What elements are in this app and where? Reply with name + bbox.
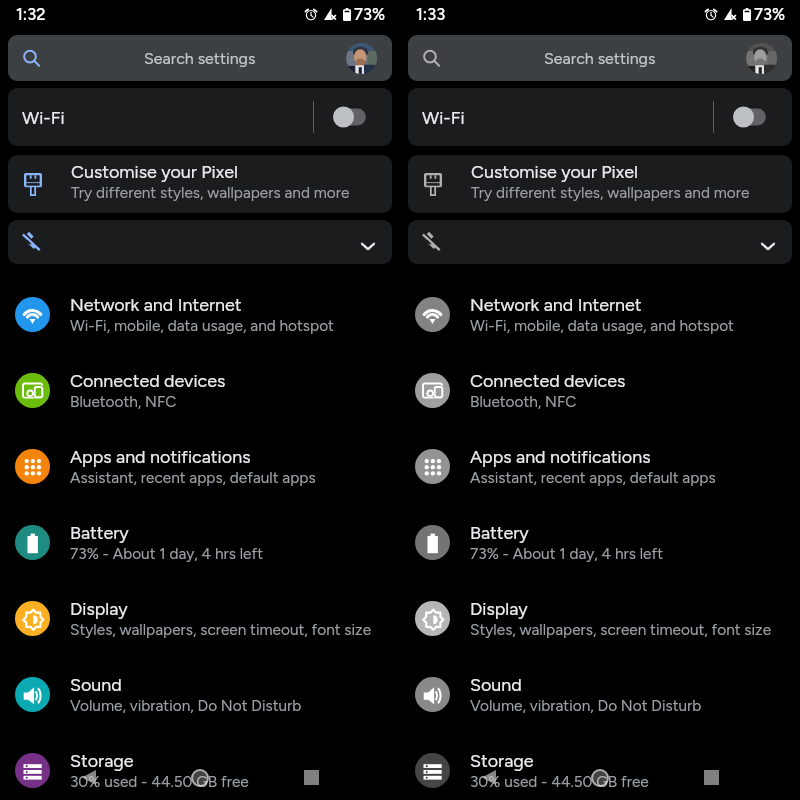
- staticText: 1:32: [16, 4, 46, 24]
- button[interactable]: Connected devices: [400, 352, 800, 428]
- button[interactable]: Back: [70, 764, 108, 790]
- staticText: 73%: [354, 4, 386, 24]
- staticText: Display: [70, 598, 128, 619]
- button[interactable]: Expand: [8, 220, 392, 264]
- button[interactable]: Home: [181, 764, 219, 791]
- staticText: 73%: [754, 4, 786, 24]
- staticText: Sound: [70, 674, 122, 695]
- staticText: 30% used - 44.50 GB free: [70, 772, 249, 790]
- staticText: Assistant, recent apps, default apps: [470, 468, 716, 486]
- staticText: 73% - About 1 day, 4 hrs left: [70, 544, 264, 562]
- staticText: 1:33: [416, 4, 446, 24]
- button[interactable]: Connected devices: [0, 352, 400, 428]
- staticText: Volume, vibration, Do Not Disturb: [70, 696, 302, 714]
- button[interactable]: Wi-Fi: [408, 88, 792, 146]
- button[interactable]: Search settings: [408, 35, 792, 81]
- button[interactable]: Battery: [0, 504, 400, 580]
- button[interactable]: Sound: [0, 656, 400, 732]
- button[interactable]: Home: [581, 764, 619, 791]
- staticText: Customise your Pixel: [471, 161, 638, 182]
- staticText: Connected devices: [470, 370, 626, 391]
- button[interactable]: Expand: [757, 235, 779, 257]
- button[interactable]: Search settings: [8, 35, 392, 81]
- staticText: Bluetooth, NFC: [70, 392, 177, 410]
- button[interactable]: Expand: [408, 220, 792, 264]
- button[interactable]: Back: [470, 764, 508, 790]
- staticText: Wi-Fi, mobile, data usage, and hotspot: [470, 316, 734, 334]
- button[interactable]: Account: [746, 43, 777, 74]
- staticText: Wi-Fi: [422, 107, 465, 128]
- button[interactable]: Storage: [400, 732, 800, 800]
- staticText: Network and Internet: [70, 294, 242, 315]
- button[interactable]: Network and Internet: [0, 276, 400, 352]
- staticText: Wi-Fi, mobile, data usage, and hotspot: [70, 316, 334, 334]
- button[interactable]: Recents: [292, 764, 330, 791]
- staticText: Connected devices: [70, 370, 226, 391]
- staticText: Battery: [470, 522, 529, 543]
- staticText: Apps and notifications: [70, 446, 251, 467]
- button[interactable]: Apps and notifications: [400, 428, 800, 504]
- button[interactable]: Sound: [400, 656, 800, 732]
- staticText: Volume, vibration, Do Not Disturb: [470, 696, 702, 714]
- staticText: Network and Internet: [470, 294, 642, 315]
- button[interactable]: Display: [0, 580, 400, 656]
- staticText: Storage: [470, 750, 534, 771]
- staticText: Display: [470, 598, 528, 619]
- button[interactable]: Display: [400, 580, 800, 656]
- staticText: Try different styles, wallpapers and mor…: [71, 183, 350, 201]
- staticText: 73% - About 1 day, 4 hrs left: [470, 544, 664, 562]
- staticText: Bluetooth, NFC: [470, 392, 577, 410]
- button[interactable]: Expand: [357, 235, 379, 257]
- button[interactable]: Wi-Fi toggle: [732, 105, 768, 129]
- button[interactable]: Customise your Pixel: [8, 155, 392, 213]
- staticText: Try different styles, wallpapers and mor…: [471, 183, 750, 201]
- staticText: Battery: [70, 522, 129, 543]
- staticText: Customise your Pixel: [71, 161, 238, 182]
- staticText: Storage: [70, 750, 134, 771]
- staticText: Sound: [470, 674, 522, 695]
- staticText: Styles, wallpapers, screen timeout, font…: [470, 620, 772, 638]
- button[interactable]: Recents: [692, 764, 730, 791]
- staticText: 30% used - 44.50 GB free: [470, 772, 649, 790]
- button[interactable]: Storage: [0, 732, 400, 800]
- staticText: Apps and notifications: [470, 446, 651, 467]
- staticText: Styles, wallpapers, screen timeout, font…: [70, 620, 372, 638]
- button[interactable]: Wi-Fi toggle: [332, 105, 368, 129]
- button[interactable]: Network and Internet: [400, 276, 800, 352]
- staticText: Wi-Fi: [22, 107, 65, 128]
- button[interactable]: Account: [346, 43, 377, 74]
- staticText: Assistant, recent apps, default apps: [70, 468, 316, 486]
- staticText: Search settings: [544, 49, 656, 68]
- button[interactable]: Customise your Pixel: [408, 155, 792, 213]
- staticText: Search settings: [144, 49, 256, 68]
- button[interactable]: Battery: [400, 504, 800, 580]
- button[interactable]: Wi-Fi: [8, 88, 392, 146]
- button[interactable]: Apps and notifications: [0, 428, 400, 504]
